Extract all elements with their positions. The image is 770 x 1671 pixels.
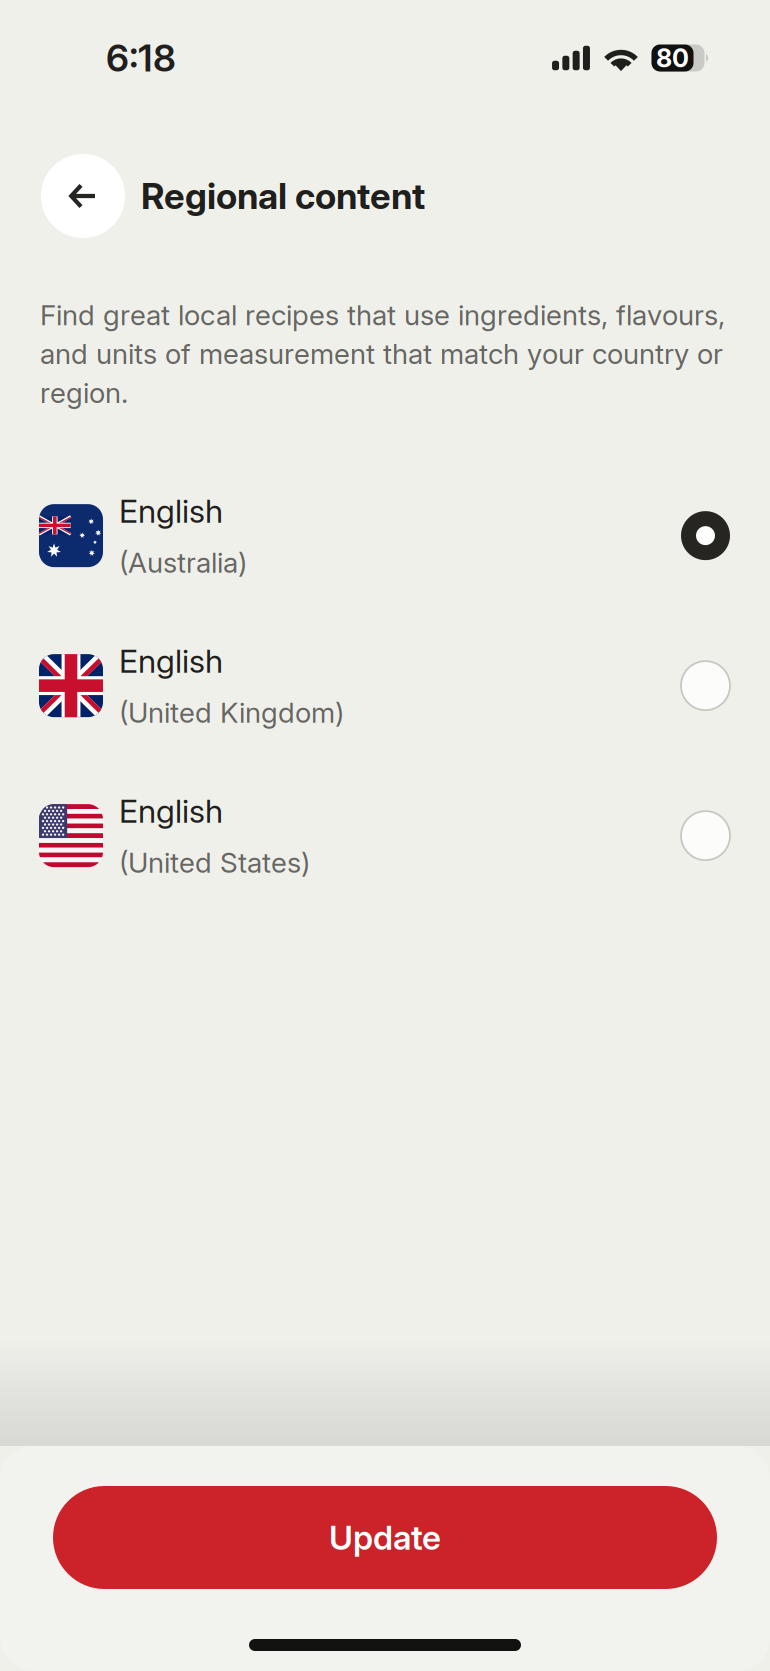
staticText: English bbox=[119, 492, 223, 530]
staticText: Find great local recipes that use ingred… bbox=[40, 298, 725, 410]
staticText: English bbox=[119, 642, 223, 680]
staticText: 6:18 bbox=[106, 35, 176, 81]
staticText: Regional content bbox=[141, 174, 425, 218]
staticText: (Australia) bbox=[119, 546, 247, 579]
staticText: English bbox=[119, 792, 223, 830]
button[interactable]: English bbox=[0, 781, 770, 891]
button[interactable]: English bbox=[0, 631, 770, 741]
button[interactable]: Update bbox=[53, 1486, 717, 1589]
staticText: (United Kingdom) bbox=[119, 696, 344, 729]
staticText: (United States) bbox=[119, 846, 310, 879]
staticText: 80 bbox=[656, 43, 689, 73]
button[interactable]: English bbox=[0, 481, 770, 591]
staticText: Update bbox=[329, 1517, 441, 1558]
button[interactable]: Back bbox=[41, 154, 125, 238]
